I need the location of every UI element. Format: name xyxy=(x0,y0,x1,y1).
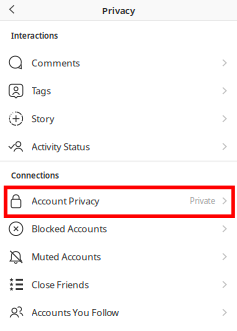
staticText: Close Friends xyxy=(31,278,88,291)
staticText: Privacy xyxy=(102,4,135,17)
button[interactable]: Tags xyxy=(0,77,237,105)
button[interactable]: Story xyxy=(0,105,237,133)
button[interactable]: Muted Accounts xyxy=(0,243,237,271)
staticText: Blocked Accounts xyxy=(31,223,106,235)
button[interactable]: Comments xyxy=(0,49,237,77)
staticText: Tags xyxy=(31,85,50,97)
staticText: Interactions xyxy=(11,30,58,41)
button[interactable]: Close Friends xyxy=(0,271,237,298)
button[interactable]: Back xyxy=(0,0,25,21)
button[interactable]: Accounts You Follow xyxy=(0,298,237,326)
button[interactable]: Activity Status xyxy=(0,133,237,160)
staticText: Private xyxy=(190,195,216,206)
staticText: Account Privacy xyxy=(31,195,99,207)
staticText: Comments xyxy=(31,57,79,69)
button[interactable]: Blocked Accounts xyxy=(0,215,237,243)
button[interactable]: Account Privacy xyxy=(0,187,237,215)
staticText: Activity Status xyxy=(31,140,89,153)
staticText: Accounts You Follow xyxy=(31,306,118,319)
staticText: Muted Accounts xyxy=(31,250,100,263)
staticText: Connections xyxy=(11,170,59,181)
staticText: Story xyxy=(31,112,54,125)
